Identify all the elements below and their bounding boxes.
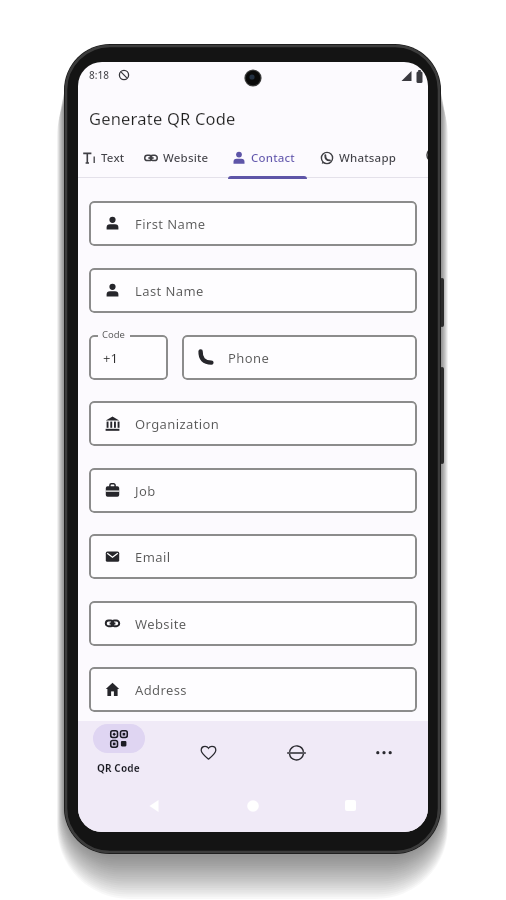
button[interactable]: [272, 723, 322, 775]
button[interactable]: [359, 723, 409, 775]
button[interactable]: Website: [140, 140, 218, 176]
staticText: 8:18: [89, 68, 109, 82]
staticText: Organization: [135, 415, 220, 433]
button[interactable]: Address: [89, 667, 417, 712]
staticText: Contact: [251, 150, 295, 166]
button[interactable]: First Name: [89, 201, 417, 246]
button[interactable]: Text: [78, 140, 134, 176]
staticText: Whatsapp: [339, 150, 397, 166]
staticText: Email: [135, 548, 171, 566]
staticText: Text: [101, 150, 125, 166]
staticText: Last Name: [135, 282, 204, 300]
button[interactable]: Website: [89, 601, 417, 646]
staticText: Code: [102, 328, 125, 341]
staticText: Website: [135, 615, 187, 633]
staticText: Website: [163, 150, 209, 166]
button[interactable]: Phone: [182, 335, 417, 380]
button[interactable]: [237, 793, 269, 819]
staticText: Job: [135, 482, 156, 500]
button[interactable]: Organization: [89, 401, 417, 446]
button[interactable]: Job: [89, 468, 417, 513]
staticText: Phone: [228, 349, 270, 367]
button[interactable]: QR Code: [90, 723, 150, 775]
button[interactable]: [138, 793, 170, 819]
button[interactable]: Contact: [228, 140, 307, 176]
staticText: QR Code: [97, 761, 140, 775]
button[interactable]: Code: [89, 335, 168, 380]
button[interactable]: Email: [89, 534, 417, 579]
button[interactable]: [335, 793, 367, 819]
button[interactable]: [184, 723, 234, 775]
staticText: First Name: [135, 215, 206, 233]
button[interactable]: Whatsapp: [316, 140, 406, 176]
staticText: Generate QR Code: [89, 107, 236, 129]
staticText: +1: [103, 349, 118, 367]
button[interactable]: Last Name: [89, 268, 417, 313]
staticText: Address: [135, 681, 187, 699]
